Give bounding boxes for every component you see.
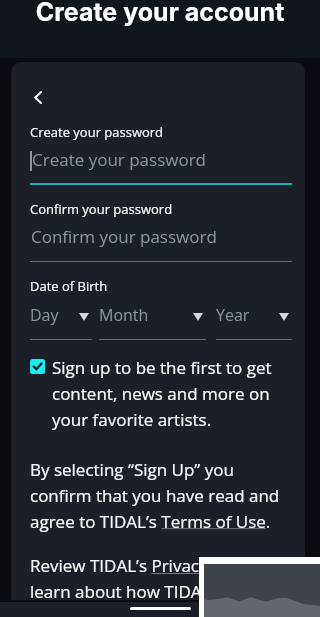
staticText: By selecting “Sign Up” you confirm that …	[30, 458, 292, 533]
staticText: Create your account	[0, 0, 320, 27]
staticText: Year	[216, 304, 250, 326]
staticText: Date of Birth	[30, 277, 108, 295]
button[interactable]: Day	[30, 304, 92, 340]
staticText: Confirm your password	[31, 225, 217, 248]
staticText: Sign up to be the first to get content, …	[52, 356, 292, 431]
staticText: Day	[30, 304, 59, 326]
button[interactable]: Sign up to be the first to get content, …	[30, 356, 292, 431]
button[interactable]: Year	[216, 304, 292, 340]
staticText: Confirm your password	[30, 200, 173, 218]
button[interactable]: Month	[99, 304, 206, 340]
staticText: Month	[99, 304, 149, 326]
staticText: Create your password	[30, 123, 164, 141]
button[interactable]: Back	[20, 79, 54, 113]
staticText: Review TIDAL’s Privacy Policy to learn a…	[30, 554, 292, 603]
staticText: Create your password	[32, 148, 207, 171]
